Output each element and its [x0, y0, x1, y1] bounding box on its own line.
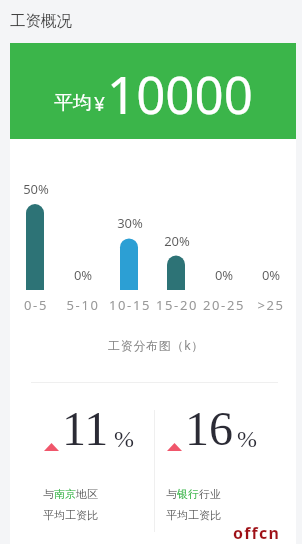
staticText: 11 — [62, 402, 109, 455]
staticText: 10-15 — [105, 296, 155, 314]
staticText: 20% — [152, 232, 202, 250]
button[interactable] — [10, 43, 296, 139]
staticText: 50% — [11, 180, 61, 198]
staticText: 5-10 — [58, 296, 108, 314]
staticText: 0% — [246, 266, 296, 284]
staticText: 工资分布图（k） — [13, 337, 299, 353]
staticText: >25 — [246, 296, 296, 314]
button[interactable]: 11 — [34, 405, 154, 530]
staticText: ¥ — [94, 91, 105, 117]
staticText: 20-25 — [199, 296, 249, 314]
staticText: 0% — [58, 266, 108, 284]
staticText: 工资概况 — [10, 11, 72, 31]
staticText: 30% — [105, 214, 155, 232]
staticText: offcn — [233, 522, 281, 544]
button[interactable]: 16 — [157, 405, 277, 530]
staticText: 10000 — [107, 59, 253, 128]
staticText: 16 — [185, 402, 233, 455]
staticText: 平均 — [54, 91, 92, 115]
staticText: 15-20 — [152, 296, 202, 314]
staticText: % — [114, 426, 134, 453]
staticText: 与南京地区 — [43, 487, 98, 501]
staticText: % — [237, 426, 257, 453]
staticText: 0% — [199, 266, 249, 284]
staticText: 平均工资比 — [166, 508, 221, 522]
staticText: 平均工资比 — [43, 508, 98, 522]
staticText: 0-5 — [11, 296, 61, 314]
staticText: 与银行行业 — [166, 487, 221, 501]
